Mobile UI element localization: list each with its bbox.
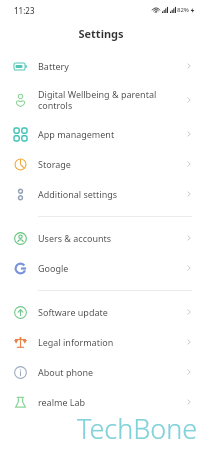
button[interactable]: Google — [0, 253, 202, 283]
staticText: realme Lab — [38, 396, 179, 408]
button[interactable]: Software update — [0, 297, 202, 327]
staticText: Additional settings — [38, 188, 179, 200]
staticText: Software update — [38, 306, 179, 318]
staticText: TechBone — [77, 410, 198, 447]
button[interactable]: Legal information — [0, 327, 202, 357]
staticText: 82% — [177, 6, 189, 14]
staticText: Digital Wellbeing & parental controls — [38, 88, 179, 112]
staticText: Battery — [38, 60, 179, 72]
staticText: Settings — [78, 26, 124, 41]
button[interactable]: Battery — [0, 51, 202, 81]
staticText: Storage — [38, 158, 179, 170]
staticText: Google — [38, 262, 179, 274]
button[interactable]: About phone — [0, 357, 202, 387]
staticText: App management — [38, 128, 179, 140]
button[interactable]: App management — [0, 119, 202, 149]
staticText: About phone — [38, 366, 179, 378]
button[interactable]: Storage — [0, 149, 202, 179]
button[interactable]: Digital Wellbeing and parental controls — [0, 81, 202, 119]
button[interactable]: Additional settings — [0, 179, 202, 209]
staticText: Users & accounts — [38, 232, 179, 244]
staticText: 11:23 — [14, 5, 35, 16]
staticText: Legal information — [38, 336, 179, 348]
button[interactable]: realme Lab — [0, 387, 202, 417]
button[interactable]: Users and accounts — [0, 223, 202, 253]
